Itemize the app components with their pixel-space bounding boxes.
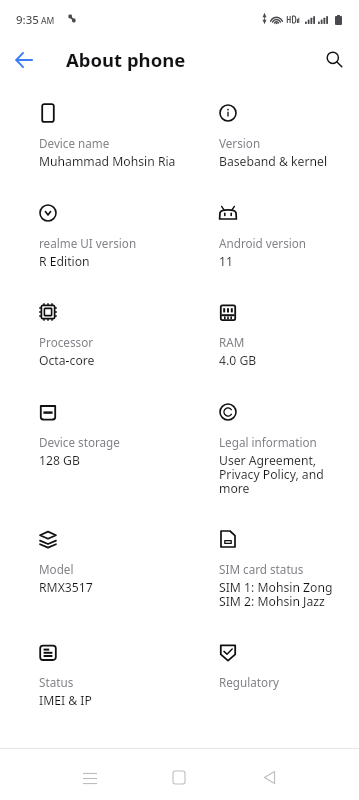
staticText: Legal information bbox=[219, 434, 317, 450]
button[interactable]: Search bbox=[314, 39, 354, 79]
staticText: RMX3517 bbox=[39, 579, 93, 596]
staticText: RAM bbox=[219, 334, 245, 350]
staticText: Baseband & kernel bbox=[219, 153, 328, 170]
staticText: Device storage bbox=[39, 434, 120, 450]
staticText: Muhammad Mohsin Ria bbox=[39, 153, 176, 170]
button[interactable]: Version bbox=[211, 103, 359, 175]
staticText: About phone bbox=[66, 47, 186, 72]
staticText: R Edition bbox=[39, 253, 90, 270]
staticText: Version bbox=[219, 135, 261, 151]
button[interactable]: realme UI version bbox=[31, 203, 179, 275]
button[interactable]: Back bbox=[4, 40, 44, 80]
button[interactable]: Model bbox=[31, 529, 179, 601]
button[interactable]: Android version bbox=[211, 203, 359, 275]
staticText: Device name bbox=[39, 135, 110, 151]
button[interactable]: SIM card status bbox=[211, 529, 359, 601]
staticText: 128 GB bbox=[39, 452, 80, 469]
staticText: Octa-core bbox=[39, 352, 95, 369]
staticText: realme UI version bbox=[39, 235, 137, 251]
staticText: 11 bbox=[219, 253, 233, 270]
button[interactable]: Processor bbox=[31, 302, 179, 374]
staticText: Processor bbox=[39, 334, 94, 350]
staticText: 4.0 GB bbox=[219, 352, 257, 369]
staticText: Regulatory bbox=[219, 674, 279, 690]
button[interactable]: Legal information bbox=[211, 402, 359, 494]
staticText: SIM 1: Mohsin Zong SIM 2: Mohsin Jazz bbox=[219, 579, 333, 609]
staticText: 9:35 bbox=[16, 12, 39, 28]
button[interactable]: Recent apps bbox=[45, 749, 134, 800]
staticText: AM bbox=[41, 15, 55, 27]
button[interactable]: Back bbox=[224, 749, 314, 800]
staticText: SIM card status bbox=[219, 561, 304, 577]
staticText: User Agreement, Privacy Policy, and more bbox=[219, 452, 324, 496]
staticText: Status bbox=[39, 674, 74, 690]
button[interactable]: Device name bbox=[31, 103, 179, 175]
staticText: Model bbox=[39, 561, 74, 577]
staticText: IMEI & IP bbox=[39, 692, 92, 709]
button[interactable]: Device storage bbox=[31, 402, 179, 474]
button[interactable]: Status bbox=[31, 642, 179, 714]
staticText: Android version bbox=[219, 235, 307, 251]
button[interactable]: Home bbox=[134, 749, 224, 800]
button[interactable]: RAM bbox=[211, 302, 359, 374]
button[interactable]: Regulatory bbox=[211, 642, 359, 714]
